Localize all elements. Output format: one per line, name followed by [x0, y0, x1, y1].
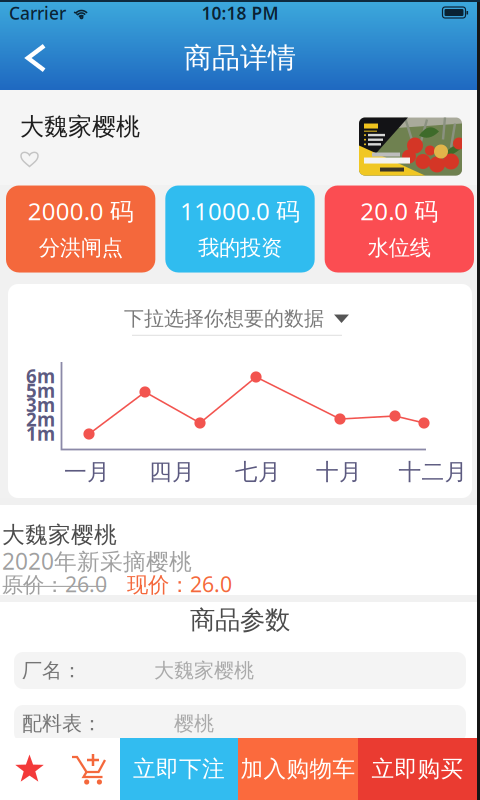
staticText: 樱桃	[174, 711, 214, 736]
button[interactable]: 下拉选择你想要的数据	[117, 302, 357, 340]
button[interactable]: Favorite	[20, 150, 39, 167]
staticText: 配料表：	[22, 711, 102, 736]
button[interactable]: Favorite	[0, 738, 58, 800]
staticText: 水位线	[368, 235, 431, 261]
staticText: 分洪闸点	[39, 235, 123, 261]
staticText: 加入购物车	[240, 755, 355, 783]
button[interactable]: 加入购物车	[238, 738, 358, 800]
staticText: 10:18 PM	[201, 1, 278, 24]
button[interactable]: Add to cart	[58, 738, 120, 800]
staticText: 6m	[26, 364, 55, 388]
button[interactable]: 立即下注	[120, 738, 238, 800]
staticText: 2020年新采摘樱桃	[2, 546, 192, 576]
staticText: 一月	[64, 458, 110, 486]
staticText: 下拉选择你想要的数据	[124, 306, 324, 331]
staticText: 十月	[316, 458, 362, 486]
staticText: 我的投资	[198, 235, 282, 261]
button[interactable]: 20.0 码	[325, 185, 474, 272]
staticText: 厂名：	[22, 658, 82, 683]
staticText: 商品参数	[190, 604, 290, 635]
staticText: 现价：26.0	[127, 570, 232, 598]
staticText: 1m	[26, 421, 55, 446]
staticText: 2000.0 码	[28, 195, 134, 227]
button[interactable]: Back	[13, 35, 59, 81]
staticText: 2m	[26, 407, 55, 432]
staticText: 立即购买	[371, 755, 463, 783]
staticText: Carrier	[9, 1, 66, 24]
button[interactable]: 11000.0 码	[165, 185, 315, 272]
staticText: 立即下注	[133, 755, 225, 783]
staticText: 商品详情	[184, 41, 296, 75]
button[interactable]: 立即购买	[358, 738, 477, 800]
staticText: 原价：26.0	[2, 570, 107, 598]
staticText: 20.0 码	[360, 195, 438, 227]
staticText: 十二月	[398, 458, 467, 486]
button[interactable]: 2000.0 码	[6, 185, 155, 272]
staticText: 3m	[26, 392, 55, 417]
staticText: 大魏家樱桃	[2, 521, 117, 549]
staticText: 大魏家樱桃	[154, 658, 254, 683]
staticText: 四月	[149, 458, 195, 486]
staticText: 5m	[26, 378, 55, 403]
staticText: 七月	[235, 458, 281, 486]
staticText: 大魏家樱桃	[20, 112, 140, 141]
staticText: 11000.0 码	[180, 195, 300, 227]
